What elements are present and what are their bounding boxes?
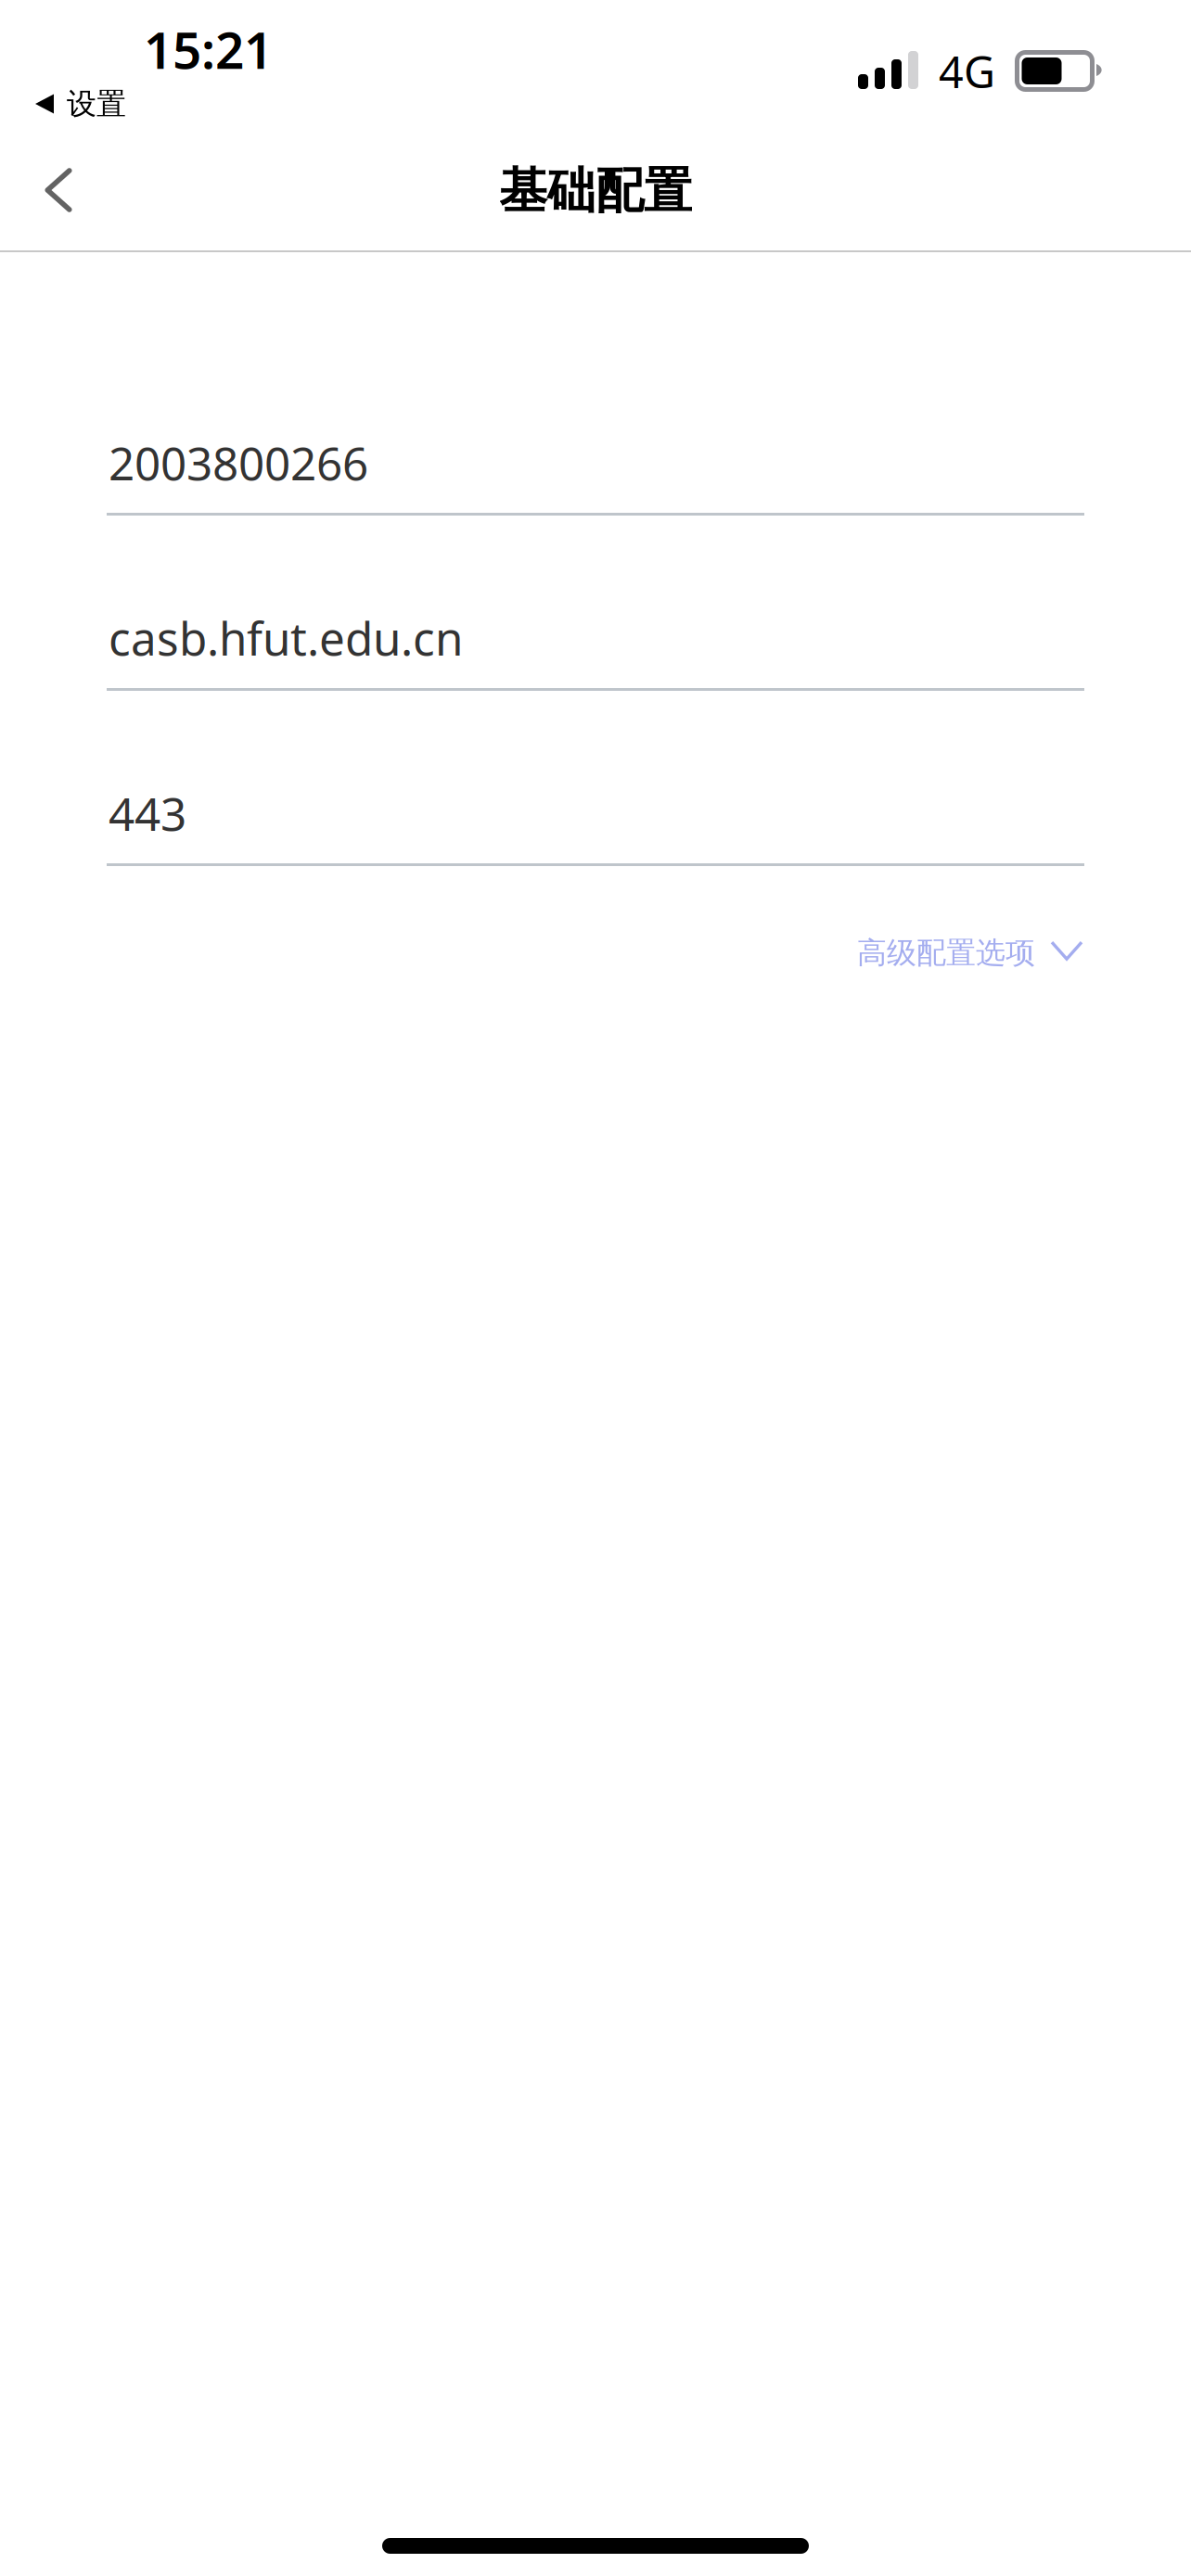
button[interactable]: 高级配置选项 — [857, 914, 1084, 992]
staticText: 设置 — [67, 86, 126, 122]
staticText: 15:21 — [144, 15, 273, 83]
staticText: 443 — [109, 783, 186, 843]
staticText: 2003800266 — [109, 432, 368, 493]
staticText: 高级配置选项 — [857, 935, 1035, 971]
staticText: 4G — [939, 43, 995, 100]
staticText: 基础配置 — [499, 161, 692, 221]
button[interactable]: casb.hfut.edu.cn — [107, 516, 1084, 691]
staticText: casb.hfut.edu.cn — [109, 607, 463, 668]
button[interactable]: Back — [3, 147, 108, 234]
button[interactable]: 2003800266 — [107, 340, 1084, 516]
button[interactable]: 443 — [107, 691, 1084, 866]
button[interactable]: 设置 — [28, 83, 141, 124]
